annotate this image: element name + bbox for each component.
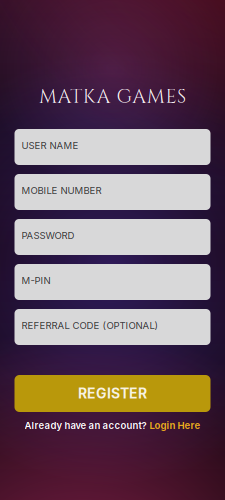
staticText: MATKA GAMES <box>39 84 186 110</box>
staticText: Login Here <box>149 420 200 431</box>
staticText: Already have an account? <box>24 420 146 431</box>
staticText: USER NAME <box>21 140 78 151</box>
staticText: MOBILE NUMBER <box>21 185 101 196</box>
button[interactable]: Login Here <box>149 420 200 431</box>
button[interactable]: REFERRAL CODE (OPTIONAL) <box>14 309 210 345</box>
button[interactable]: M-PIN <box>14 264 210 300</box>
staticText: REFERRAL CODE (OPTIONAL) <box>21 320 158 331</box>
button[interactable]: USER NAME <box>14 129 210 165</box>
button[interactable]: MOBILE NUMBER <box>14 174 210 210</box>
staticText: M-PIN <box>21 275 50 286</box>
staticText: REGISTER <box>78 385 147 402</box>
staticText: PASSWORD <box>21 230 74 241</box>
button[interactable]: REGISTER <box>14 375 210 412</box>
button[interactable]: PASSWORD <box>14 219 210 255</box>
